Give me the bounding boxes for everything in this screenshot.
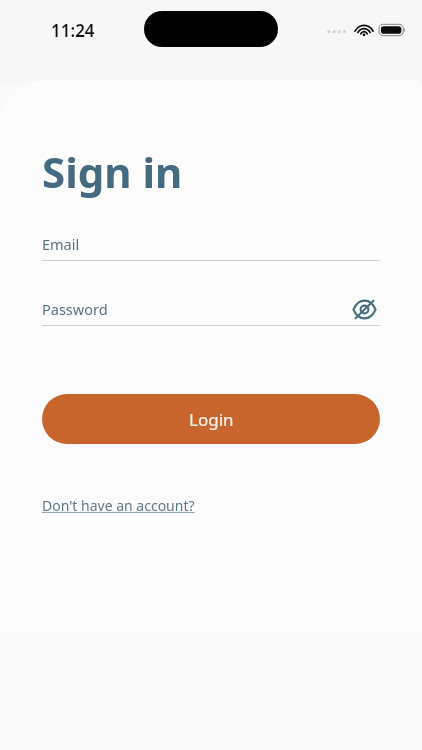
staticText: Password [42,299,108,319]
button[interactable]: Login [42,394,380,444]
button[interactable]: Password [42,292,380,325]
staticText: Login [189,408,234,431]
button[interactable]: Email [42,227,380,260]
staticText: Sign in [42,143,183,200]
button[interactable]: Show password [348,293,380,325]
staticText: Don't have an account? [42,496,195,515]
staticText: Email [42,234,80,254]
staticText: 11:24 [51,19,95,42]
button[interactable]: Don't have an account? [42,496,195,515]
